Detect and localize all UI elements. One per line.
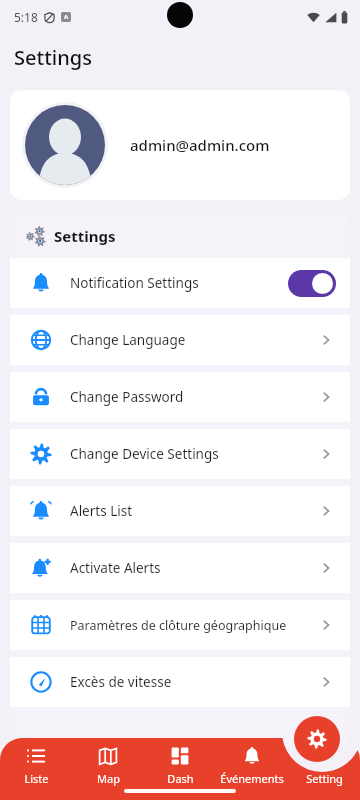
staticText: Notification Settings xyxy=(70,274,199,292)
button[interactable]: Map xyxy=(72,742,144,800)
staticText: admin@admin.com xyxy=(130,135,270,155)
staticText: Settings xyxy=(54,226,116,246)
button[interactable]: Change Password xyxy=(10,372,350,422)
button[interactable]: Settings xyxy=(294,716,340,762)
staticText: Change Language xyxy=(70,331,186,349)
staticText: A xyxy=(64,13,69,21)
staticText: Change Device Settings xyxy=(70,445,219,463)
button[interactable]: admin@admin.com xyxy=(10,90,350,200)
staticText: Settings xyxy=(14,44,92,71)
button[interactable]: Notification toggle xyxy=(288,270,336,297)
button[interactable]: Activate Alerts xyxy=(10,543,350,593)
staticText: Change Password xyxy=(70,388,184,406)
staticText: Liste xyxy=(24,771,49,786)
staticText: Alerts List xyxy=(70,502,133,520)
staticText: 5:18 xyxy=(14,9,38,25)
staticText: Excès de vitesse xyxy=(70,673,172,691)
staticText: Setting xyxy=(306,771,343,786)
button[interactable]: Change Device Settings xyxy=(10,429,350,479)
button[interactable]: Liste xyxy=(0,742,72,800)
staticText: Paramètres de clôture géographique xyxy=(70,617,287,634)
button[interactable]: Change Language xyxy=(10,315,350,365)
button[interactable]: Événements xyxy=(216,742,288,800)
staticText: Map xyxy=(97,771,120,786)
button[interactable]: Notification Settings xyxy=(10,258,350,308)
staticText: Activate Alerts xyxy=(70,559,161,577)
staticText: Événements xyxy=(220,771,284,786)
button[interactable]: Paramètres de clôture géographique xyxy=(10,600,350,650)
button[interactable]: Alerts List xyxy=(10,486,350,536)
button[interactable]: Setting xyxy=(288,742,360,800)
button[interactable]: Excès de vitesse xyxy=(10,657,350,707)
button[interactable]: Dash xyxy=(144,742,216,800)
staticText: Dash xyxy=(167,771,194,786)
